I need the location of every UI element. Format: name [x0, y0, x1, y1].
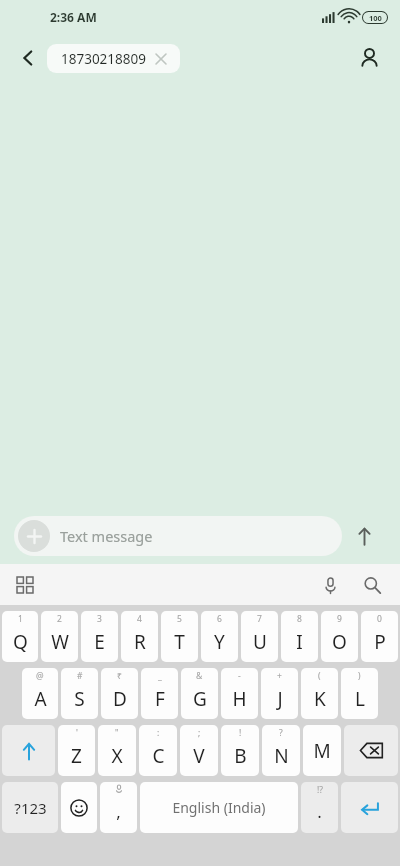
button[interactable]: 1 — [2, 611, 38, 662]
staticText: V — [193, 743, 205, 769]
button[interactable]: # — [61, 668, 98, 719]
staticText: 18730218809 — [61, 50, 146, 68]
staticText: R — [134, 629, 146, 655]
staticText: English (India) — [172, 798, 266, 817]
staticText: & — [196, 670, 203, 682]
button[interactable]: - — [221, 668, 258, 719]
button[interactable]: enter — [341, 782, 398, 833]
staticText: 8 — [297, 613, 302, 625]
button[interactable]: del — [344, 725, 398, 776]
button[interactable]: Send — [342, 514, 386, 558]
button[interactable]: ; — [180, 725, 218, 776]
staticText: 100 — [369, 13, 382, 23]
staticText: X — [111, 743, 123, 769]
staticText: P — [374, 629, 386, 655]
button[interactable]: ) — [341, 668, 378, 719]
staticText: 1 — [18, 613, 23, 625]
button[interactable]: 4 — [121, 611, 158, 662]
staticText: !? — [317, 784, 323, 796]
staticText: _ — [158, 670, 162, 682]
button[interactable]: 18730218809 — [47, 44, 180, 73]
button[interactable]: _ — [141, 668, 178, 719]
button[interactable]: @ — [22, 668, 58, 719]
staticText: E — [94, 629, 105, 655]
staticText: A — [34, 686, 47, 712]
button[interactable]: 6 — [201, 611, 238, 662]
staticText: Text message — [60, 526, 153, 546]
staticText: " — [115, 727, 119, 739]
staticText: + — [277, 670, 282, 682]
staticText: Q — [13, 629, 28, 655]
staticText: ; — [198, 727, 201, 739]
button[interactable]: Text message — [14, 516, 342, 556]
button[interactable]: & — [181, 668, 218, 719]
staticText: - — [238, 670, 241, 682]
staticText: 9 — [337, 613, 342, 625]
staticText: Y — [214, 629, 225, 655]
button[interactable]: ? — [262, 725, 300, 776]
staticText: I — [296, 629, 303, 655]
staticText: S — [74, 686, 85, 712]
button[interactable]: 7 — [241, 611, 278, 662]
staticText: ! — [239, 727, 242, 739]
staticText: # — [77, 670, 83, 682]
staticText: . — [317, 800, 322, 823]
button[interactable]: Contact — [348, 37, 390, 79]
button[interactable]: M — [303, 725, 341, 776]
staticText: T — [174, 629, 185, 655]
staticText: U — [253, 629, 267, 655]
staticText: 3 — [97, 613, 102, 625]
staticText: O — [332, 629, 347, 655]
button[interactable]: shift — [2, 725, 55, 776]
staticText: Z — [71, 743, 82, 769]
staticText: 2:36 AM — [50, 9, 97, 25]
button[interactable]: " — [98, 725, 136, 776]
staticText: , — [116, 800, 121, 823]
staticText: H — [232, 686, 247, 712]
button[interactable]: Keyboard menu — [8, 568, 42, 602]
button[interactable]: ( — [301, 668, 338, 719]
button[interactable]: ?123 — [2, 782, 58, 833]
button[interactable]: ₹ — [101, 668, 138, 719]
staticText: 5 — [177, 613, 182, 625]
staticText: K — [314, 686, 326, 712]
button[interactable]: Voice input — [312, 567, 348, 603]
staticText: D — [113, 686, 127, 712]
staticText: ( — [318, 670, 321, 682]
staticText: W — [51, 629, 69, 655]
button[interactable]: Search — [354, 567, 390, 603]
staticText: C — [152, 743, 165, 769]
staticText: G — [193, 686, 207, 712]
button[interactable]: ! — [221, 725, 259, 776]
button[interactable]: 9 — [321, 611, 358, 662]
button[interactable]: 3 — [81, 611, 118, 662]
staticText: B — [234, 743, 247, 769]
staticText: ' — [76, 727, 78, 739]
staticText: M — [313, 738, 331, 764]
staticText: ₹ — [117, 670, 122, 682]
staticText: J — [277, 686, 283, 712]
button[interactable]: ' — [58, 725, 95, 776]
button[interactable]: : — [139, 725, 177, 776]
button[interactable]: 2 — [41, 611, 78, 662]
staticText: 2 — [57, 613, 62, 625]
staticText: 0 — [377, 613, 382, 625]
button[interactable]: , — [100, 782, 137, 833]
button[interactable]: 8 — [281, 611, 318, 662]
staticText: ?123 — [14, 798, 47, 818]
staticText: 7 — [257, 613, 262, 625]
staticText: 4 — [137, 613, 142, 625]
button[interactable]: 0 — [361, 611, 398, 662]
staticText: N — [274, 743, 289, 769]
staticText: ) — [358, 670, 361, 682]
staticText: F — [155, 686, 165, 712]
staticText: ? — [279, 727, 283, 739]
button[interactable]: Back — [8, 38, 48, 78]
button[interactable]: + — [261, 668, 298, 719]
button[interactable]: emoji — [61, 782, 97, 833]
button[interactable]: !? — [301, 782, 338, 833]
staticText: 6 — [217, 613, 222, 625]
button[interactable]: 5 — [161, 611, 198, 662]
staticText: : — [157, 727, 160, 739]
button[interactable]: English (India) — [140, 782, 298, 833]
